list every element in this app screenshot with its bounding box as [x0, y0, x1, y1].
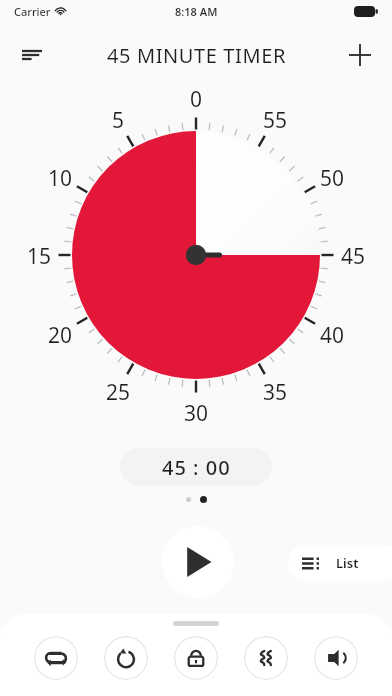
button[interactable]: 0	[0, 85, 392, 425]
staticText: 55	[259, 106, 291, 132]
button[interactable]: Menu	[10, 33, 54, 77]
button[interactable]: List	[288, 545, 392, 581]
button[interactable]: 45 : 00	[120, 448, 272, 486]
staticText: 15	[23, 242, 55, 268]
button[interactable]: Lock	[174, 636, 218, 680]
button[interactable]: Vibrate	[244, 636, 288, 680]
staticText: 5	[102, 106, 134, 132]
staticText: 10	[44, 164, 76, 190]
button[interactable]: Reset	[104, 636, 148, 680]
button[interactable]: Sound	[314, 636, 358, 680]
staticText: 8:18 AM	[175, 4, 218, 19]
staticText: List	[336, 554, 359, 572]
staticText: 30	[180, 399, 212, 425]
button[interactable]: Repeat	[34, 636, 78, 680]
staticText: 50	[316, 164, 348, 190]
button[interactable]: Add timer	[338, 33, 382, 77]
staticText: Carrier	[14, 4, 51, 19]
staticText: 20	[44, 321, 76, 347]
button[interactable]: Start timer	[162, 526, 234, 598]
staticText: 45 MINUTE TIMER	[107, 42, 286, 69]
staticText: 45 : 00	[162, 454, 231, 481]
staticText: 40	[316, 321, 348, 347]
staticText: 45	[337, 242, 369, 268]
staticText: 25	[102, 378, 134, 404]
staticText: 35	[259, 378, 291, 404]
staticText: 0	[180, 85, 212, 111]
